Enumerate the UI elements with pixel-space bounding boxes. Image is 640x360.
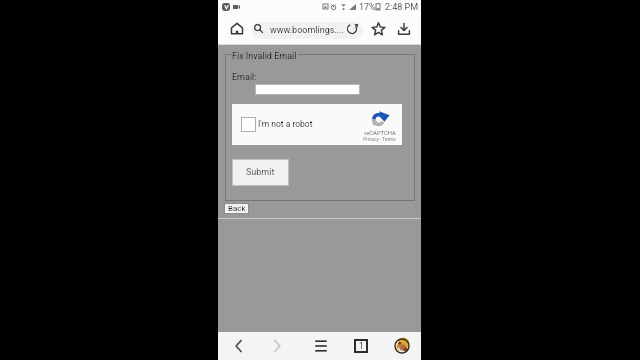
button[interactable]: Tabs (352, 337, 370, 355)
button[interactable]: Bookmark (369, 19, 388, 38)
staticText: Privacy - Terms (363, 137, 396, 143)
staticText: 17% (359, 2, 376, 13)
button[interactable]: Submit (232, 159, 289, 186)
button[interactable]: Email input (255, 84, 360, 95)
button[interactable]: I'm not a robot checkbox (241, 117, 256, 132)
button[interactable]: www.boomlings.... (252, 22, 363, 39)
button[interactable]: Forward (268, 337, 286, 355)
staticText: Back (228, 204, 246, 213)
staticText: Email: (232, 72, 257, 83)
staticText: reCAPTCHA (364, 130, 396, 137)
button[interactable]: Back (230, 337, 248, 355)
button[interactable]: Profile (393, 337, 411, 355)
button[interactable]: Menu (312, 337, 330, 355)
staticText: 2:48 PM (385, 2, 419, 13)
staticText: 1 (359, 341, 364, 351)
staticText: I'm not a robot (258, 119, 313, 129)
button[interactable]: Home (226, 18, 247, 39)
button[interactable]: Downloads (394, 19, 413, 38)
staticText: Submit (246, 167, 275, 178)
button[interactable]: Back (224, 203, 249, 214)
staticText: Fix Invalid Email (232, 51, 297, 62)
staticText: www.boomlings.... (270, 25, 344, 36)
